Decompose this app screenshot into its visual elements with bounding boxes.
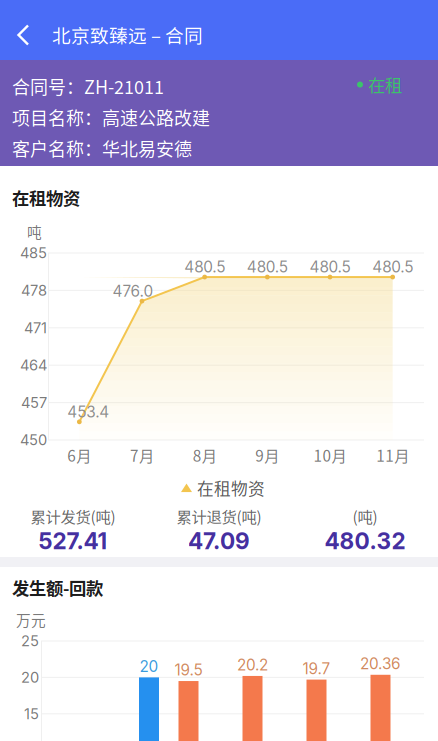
staticText: 20 — [21, 668, 39, 686]
staticText: 480.5 — [372, 258, 413, 276]
staticText: 9月 — [255, 444, 279, 466]
staticText: 476.0 — [112, 282, 153, 300]
staticText: 20.2 — [237, 656, 268, 674]
staticText: 480.5 — [247, 258, 288, 276]
staticText: 7月 — [130, 444, 154, 466]
staticText: 464 — [20, 356, 47, 374]
staticText: 6月 — [67, 444, 91, 466]
staticText: 527.41 — [38, 527, 107, 555]
staticText: 吨 — [27, 221, 42, 242]
staticText: 发生额-回款 — [12, 575, 103, 600]
staticText: 20 — [139, 657, 158, 676]
staticText: 累计退货(吨) — [176, 505, 261, 527]
staticText: 8月 — [193, 444, 217, 466]
staticText: 19.7 — [302, 659, 330, 678]
staticText: 10月 — [313, 444, 346, 466]
staticText: 客户名称：华北易安德 — [12, 135, 192, 161]
staticText: 25 — [21, 632, 39, 650]
staticText: 北京致臻远 – 合同 — [52, 21, 203, 48]
staticText: 15 — [24, 705, 39, 723]
staticText: 11月 — [376, 444, 409, 466]
staticText: 450 — [20, 431, 47, 449]
staticText: 480.5 — [309, 258, 350, 276]
staticText: 万元 — [16, 609, 46, 630]
button[interactable]: Back — [0, 0, 48, 60]
staticText: 453.4 — [67, 403, 109, 421]
staticText: 在租物资 — [197, 476, 265, 500]
staticText: 在租物资 — [12, 185, 80, 210]
staticText: 478 — [21, 281, 47, 299]
staticText: 合同号：ZH-21011 — [12, 73, 164, 99]
staticText: 471 — [24, 319, 47, 337]
staticText: 在租 — [368, 72, 402, 97]
staticText: 19.5 — [174, 661, 202, 679]
staticText: 480.32 — [324, 527, 405, 555]
staticText: 累计发货(吨) — [30, 505, 115, 527]
staticText: 20.36 — [360, 654, 401, 673]
staticText: 47.09 — [188, 527, 250, 555]
staticText: (吨) — [352, 505, 377, 527]
staticText: 485 — [20, 244, 47, 262]
staticText: 480.5 — [184, 258, 225, 276]
staticText: 项目名称：高速公路改建 — [12, 104, 210, 130]
staticText: 457 — [21, 394, 47, 411]
